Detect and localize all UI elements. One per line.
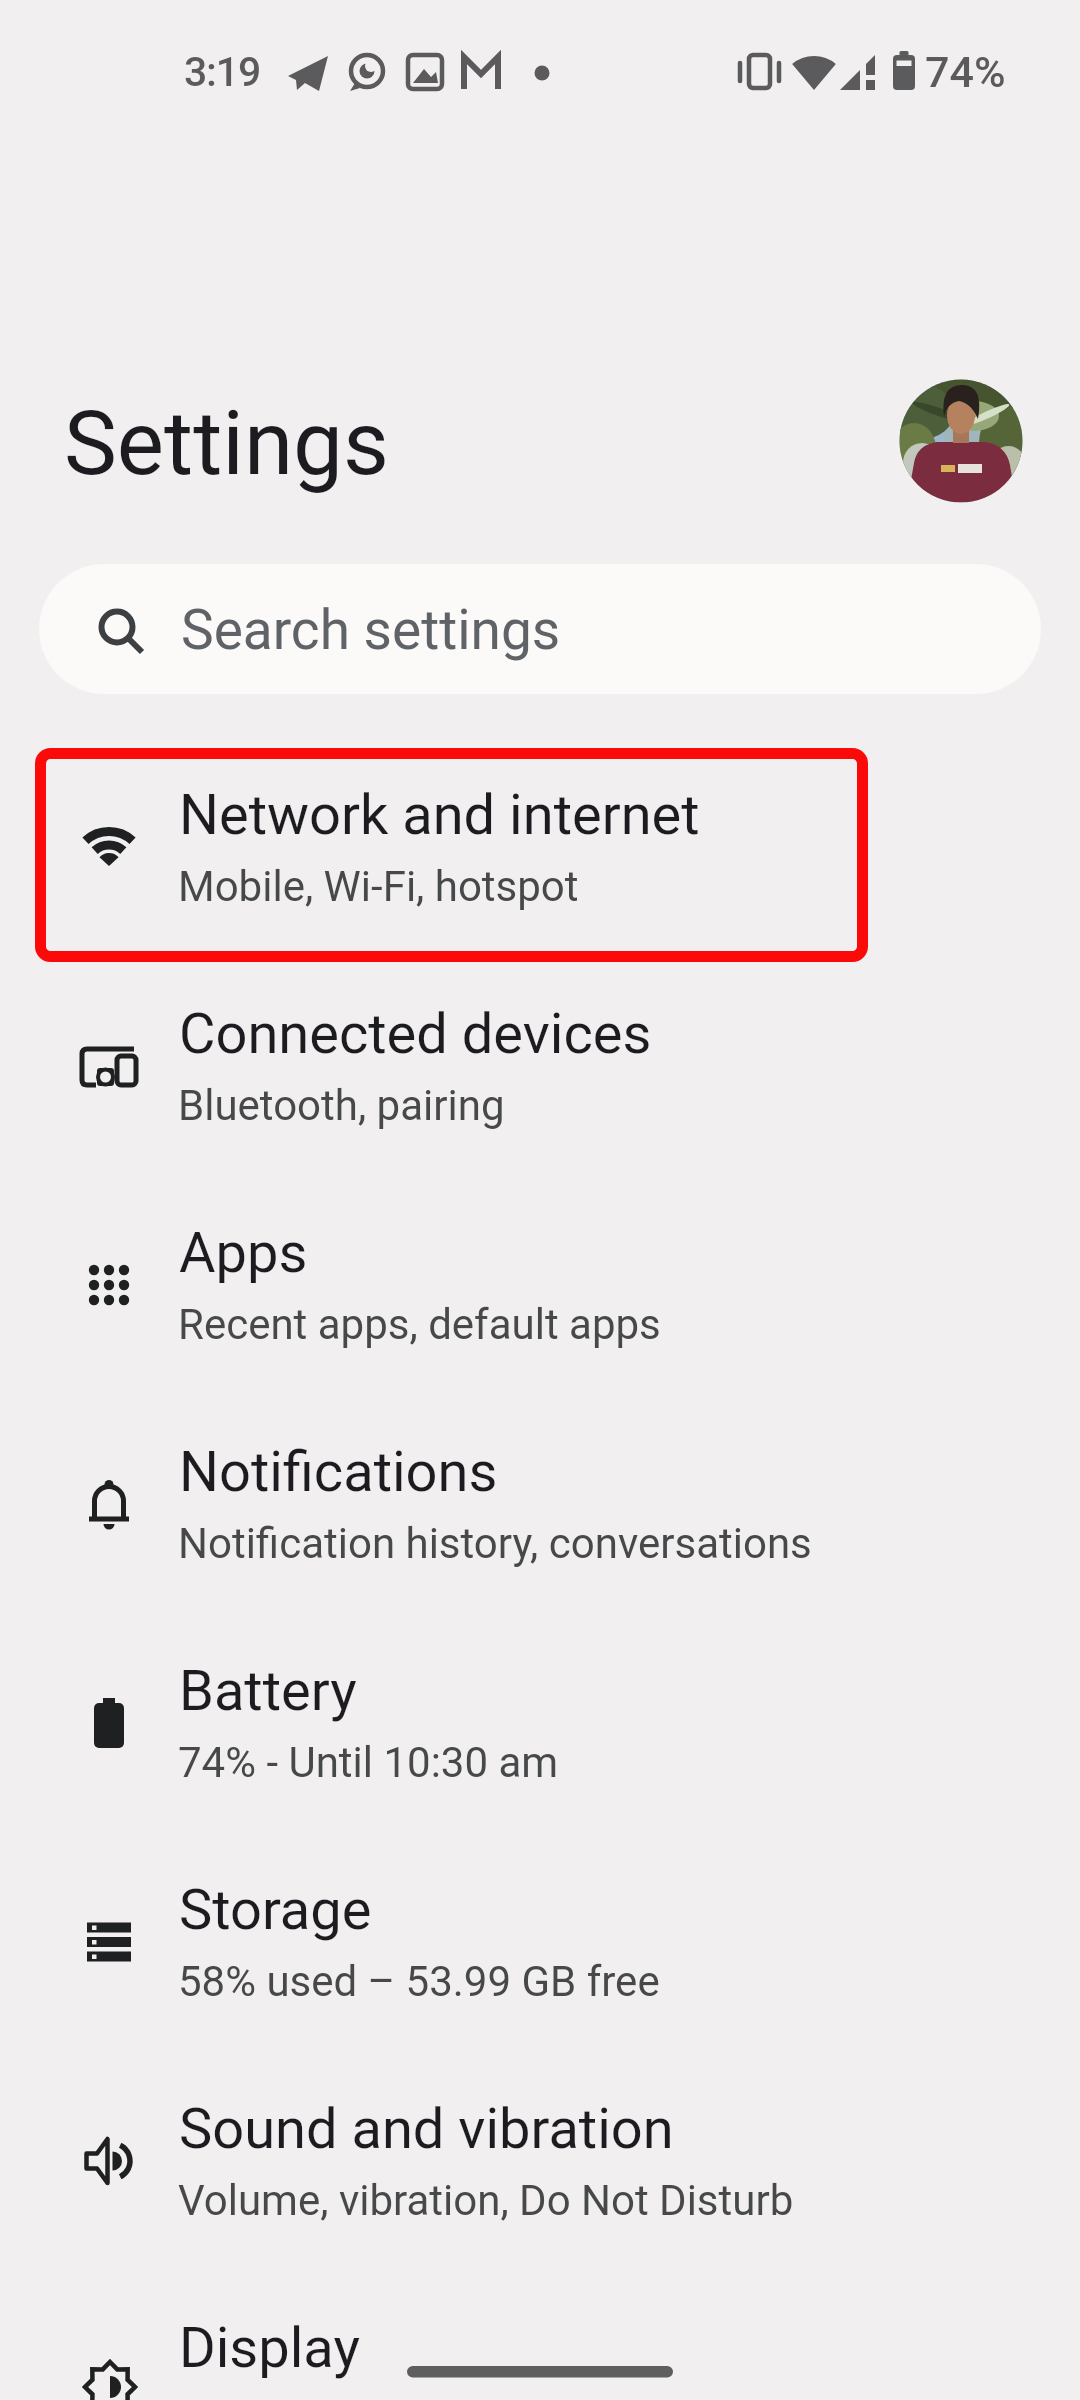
- staticText: Network and internet: [179, 782, 700, 848]
- staticText: Notifications: [179, 1439, 498, 1505]
- button[interactable]: [0, 1614, 1080, 1833]
- staticText: Notification history, conversations: [178, 1519, 812, 1568]
- button[interactable]: [0, 2271, 1080, 2400]
- button[interactable]: [0, 957, 1080, 1176]
- staticText: 74% - Until 10:30 am: [178, 1738, 559, 1787]
- button[interactable]: [899, 379, 1023, 503]
- button[interactable]: [0, 1176, 1080, 1395]
- staticText: Bluetooth, pairing: [178, 1081, 505, 1130]
- staticText: Display: [179, 2315, 360, 2381]
- staticText: Sound and vibration: [179, 2096, 674, 2162]
- button[interactable]: [0, 2052, 1080, 2271]
- staticText: Battery: [179, 1658, 357, 1724]
- staticText: 74%: [925, 47, 1006, 97]
- staticText: 3:19: [184, 48, 260, 96]
- button[interactable]: [0, 1395, 1080, 1614]
- button[interactable]: [0, 738, 1080, 957]
- staticText: Volume, vibration, Do Not Disturb: [178, 2176, 794, 2225]
- button[interactable]: [39, 564, 1041, 694]
- staticText: Recent apps, default apps: [178, 1300, 661, 1349]
- button[interactable]: [0, 1833, 1080, 2052]
- staticText: Apps: [179, 1220, 308, 1286]
- staticText: Settings: [64, 391, 389, 495]
- staticText: Storage: [179, 1877, 372, 1943]
- staticText: Search settings: [181, 598, 561, 662]
- staticText: Mobile, Wi-Fi, hotspot: [178, 862, 579, 911]
- staticText: Connected devices: [179, 1001, 652, 1067]
- staticText: 58% used – 53.99 GB free: [178, 1957, 660, 2006]
